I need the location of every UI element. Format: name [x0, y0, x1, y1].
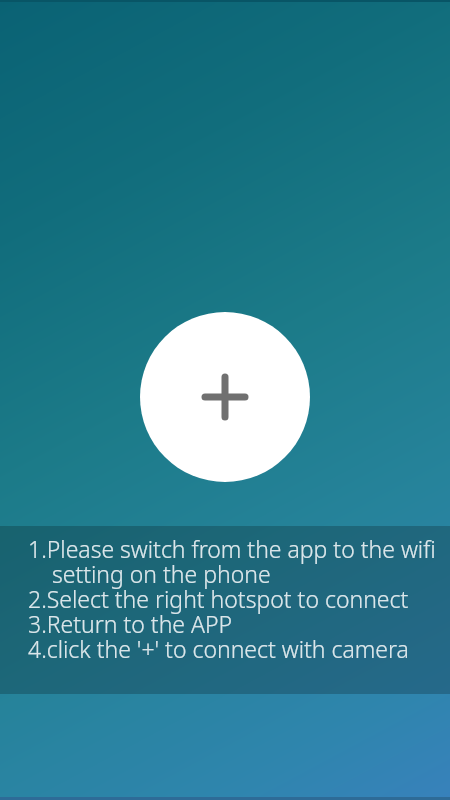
button[interactable]: Add camera	[140, 312, 310, 482]
staticText: 1.Please switch from the app to the wifi…	[28, 539, 436, 664]
